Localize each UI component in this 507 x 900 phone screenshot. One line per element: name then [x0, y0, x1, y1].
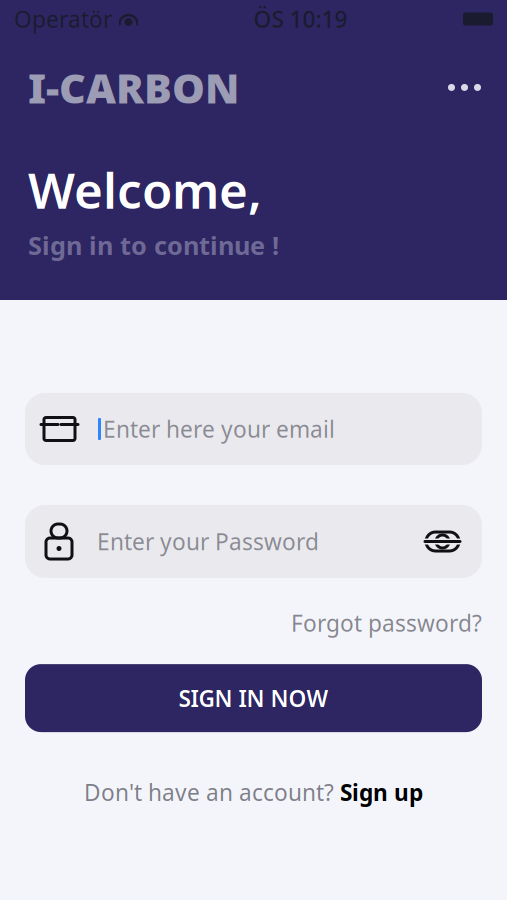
staticText: Sign in to continue ! — [28, 228, 279, 262]
staticText: SIGN IN NOW — [178, 683, 328, 713]
button[interactable]: SIGN IN NOW — [25, 664, 482, 732]
staticText: Don't have an account? — [84, 777, 340, 807]
button[interactable]: Enter your Password — [25, 505, 482, 578]
button[interactable]: More options — [434, 70, 495, 105]
staticText: ÖS 10:19 — [253, 4, 347, 34]
staticText: Enter your Password — [97, 526, 319, 556]
staticText: Forgot password? — [291, 608, 482, 638]
button[interactable]: Don't have an account? — [84, 767, 423, 817]
staticText: Enter here your email — [103, 414, 335, 444]
staticText: Sign up — [340, 777, 423, 807]
staticText: Operatör — [14, 4, 112, 34]
staticText: Welcome, — [28, 157, 262, 222]
button[interactable]: Forgot password? — [291, 600, 482, 646]
button[interactable]: Enter here your email — [25, 393, 482, 465]
staticText: I-CARBON — [28, 60, 239, 115]
